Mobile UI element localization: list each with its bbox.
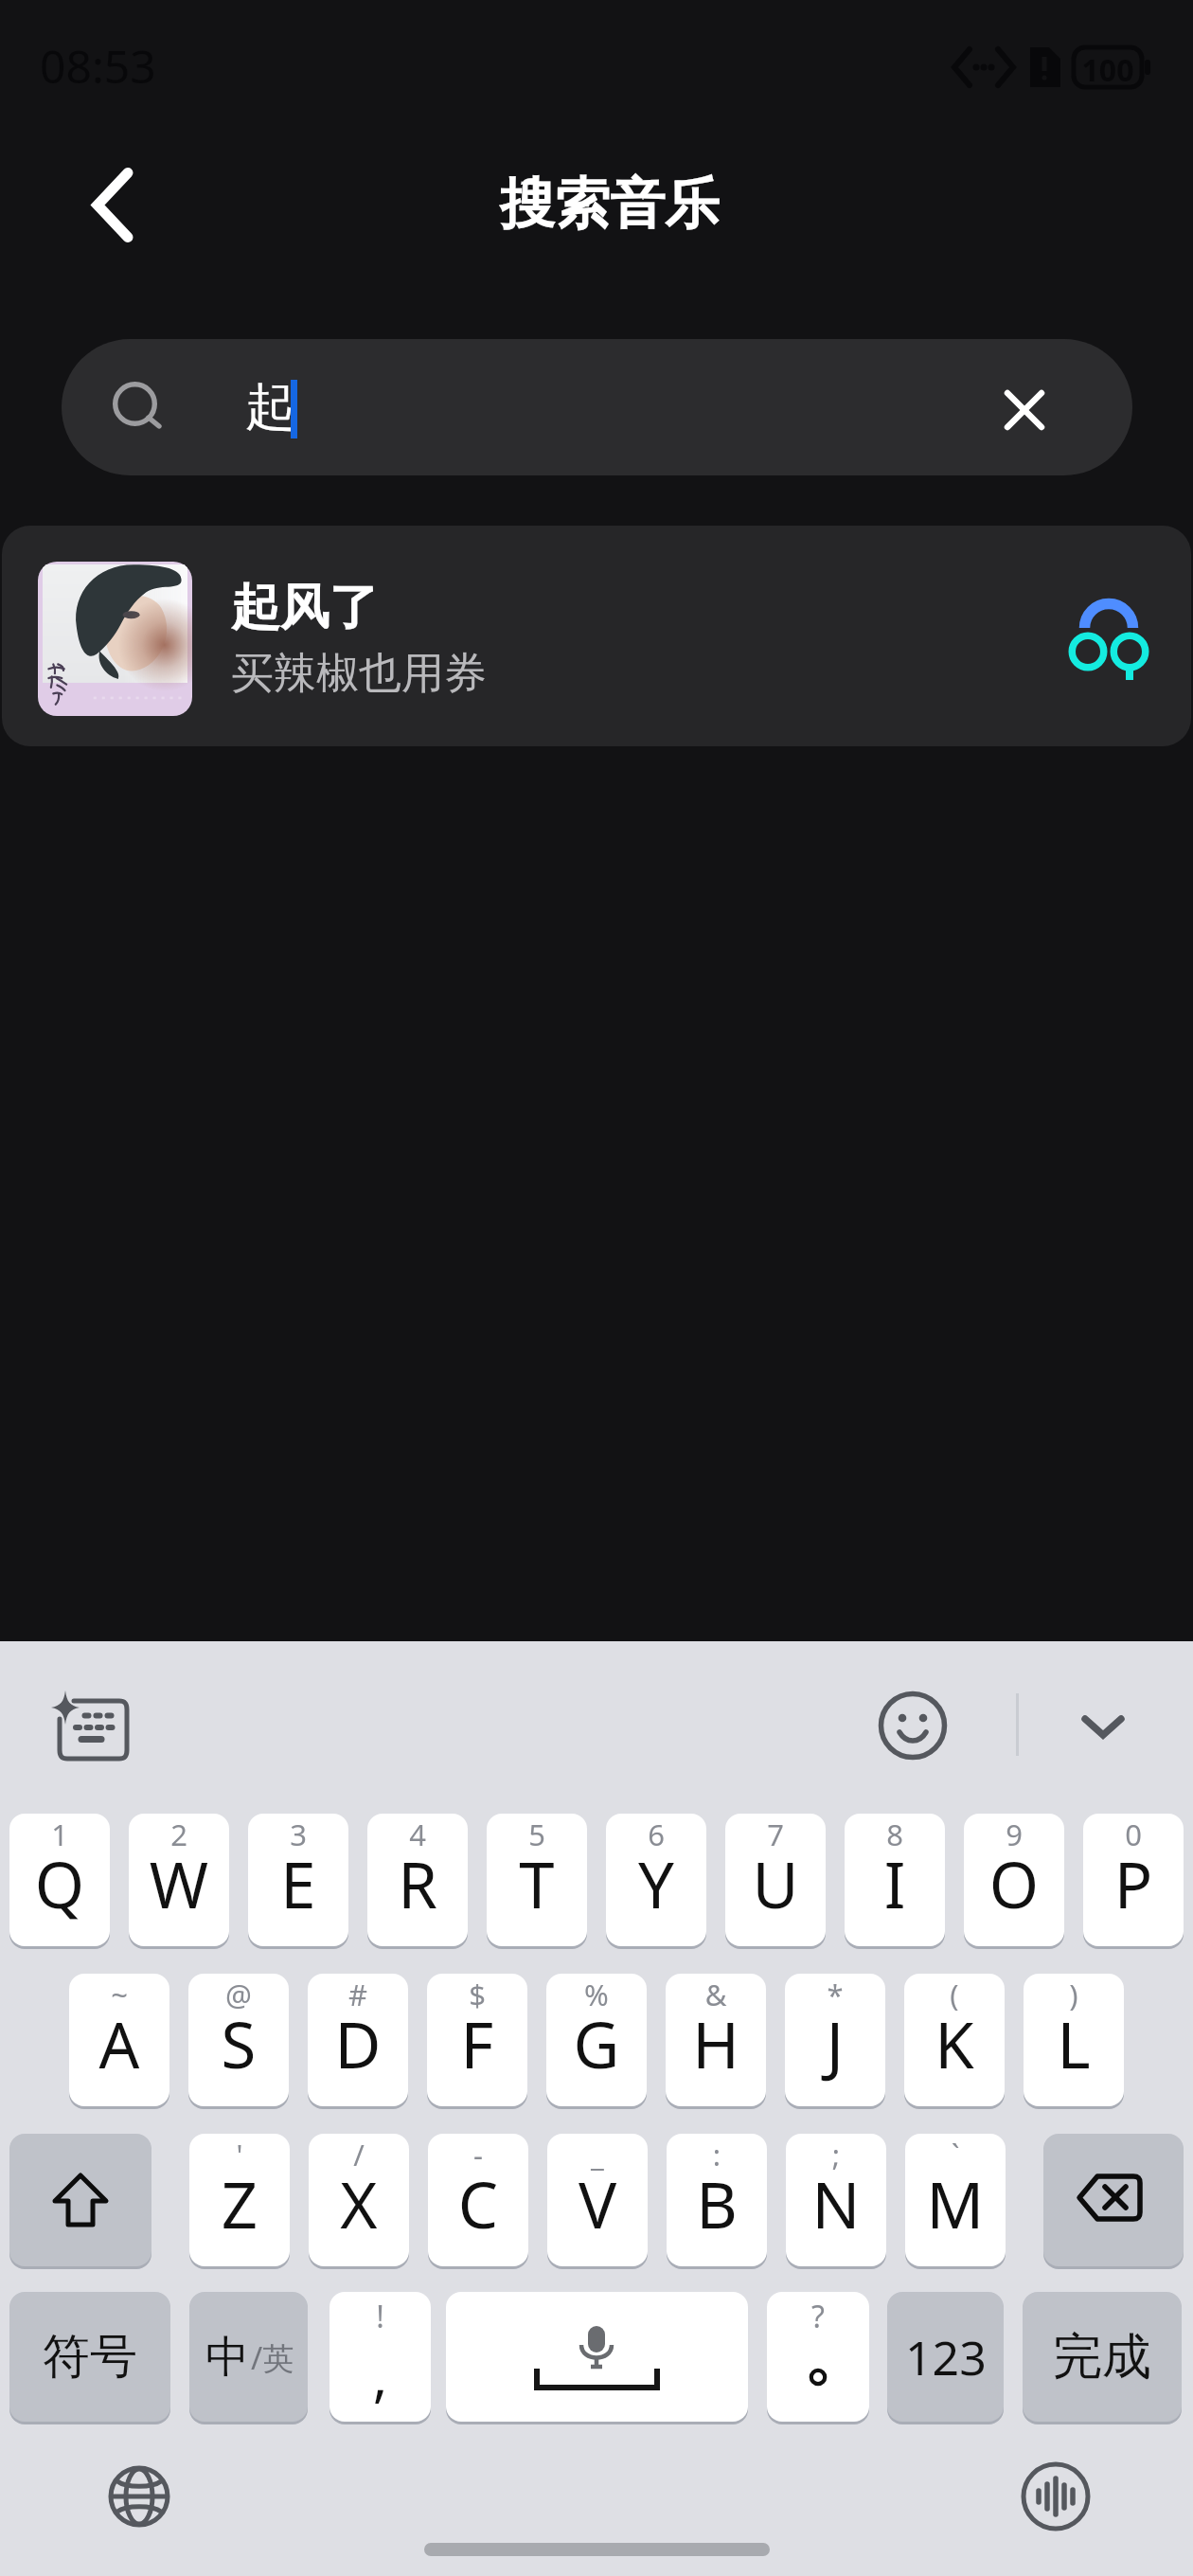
staticText: U: [725, 1840, 826, 1926]
button[interactable]: ?: [767, 2292, 869, 2422]
button[interactable]: /: [309, 2134, 409, 2266]
staticText: F: [427, 2000, 527, 2086]
button[interactable]: 8: [845, 1814, 945, 1946]
button[interactable]: !: [329, 2292, 431, 2422]
button[interactable]: @: [188, 1974, 289, 2106]
button[interactable]: 9: [964, 1814, 1064, 1946]
staticText: H: [666, 2000, 766, 2086]
staticText: I: [845, 1840, 945, 1926]
staticText: &: [666, 1975, 766, 2014]
staticText: `: [905, 2135, 1006, 2174]
button[interactable]: Space: [446, 2292, 748, 2422]
button[interactable]: Shift: [9, 2134, 151, 2266]
staticText: K: [904, 2000, 1005, 2086]
button[interactable]: ;: [786, 2134, 886, 2266]
button[interactable]: `: [905, 2134, 1006, 2266]
staticText: 3: [248, 1815, 348, 1854]
staticText: 100: [1081, 49, 1134, 87]
button[interactable]: 起: [62, 339, 1132, 475]
staticText: ): [1024, 1975, 1124, 2014]
button[interactable]: 2: [129, 1814, 229, 1946]
staticText: $: [427, 1975, 527, 2014]
staticText: -: [428, 2135, 528, 2174]
staticText: V: [547, 2160, 648, 2246]
staticText: J: [785, 2000, 885, 2086]
staticText: 9: [964, 1815, 1064, 1854]
button[interactable]: _: [547, 2134, 648, 2266]
button[interactable]: 0: [1083, 1814, 1184, 1946]
staticText: #: [308, 1975, 408, 2014]
staticText: 0: [1083, 1815, 1184, 1854]
button[interactable]: ': [189, 2134, 290, 2266]
staticText: 1: [9, 1815, 110, 1854]
staticText: L: [1024, 2000, 1124, 2086]
staticText: (: [904, 1975, 1005, 2014]
staticText: 完成: [1053, 2326, 1151, 2388]
staticText: 搜索音乐: [13, 170, 1193, 239]
staticText: 买辣椒也用券: [231, 647, 487, 701]
button[interactable]: :: [667, 2134, 767, 2266]
button[interactable]: 符号: [9, 2292, 170, 2422]
button[interactable]: 起风了: [2, 526, 1191, 746]
staticText: %: [546, 1975, 647, 2014]
staticText: 6: [606, 1815, 706, 1854]
staticText: 中: [205, 2330, 249, 2385]
button[interactable]: $: [427, 1974, 527, 2106]
button[interactable]: Backspace: [1043, 2134, 1184, 2266]
button[interactable]: Listen: [1040, 565, 1184, 709]
staticText: S: [188, 2000, 289, 2086]
staticText: 起风了: [231, 577, 379, 639]
button[interactable]: (: [904, 1974, 1005, 2106]
button[interactable]: &: [666, 1974, 766, 2106]
button[interactable]: Clear text: [968, 353, 1081, 467]
staticText: G: [546, 2000, 647, 2086]
staticText: R: [367, 1840, 468, 1926]
staticText: _: [547, 2135, 648, 2174]
button[interactable]: -: [428, 2134, 528, 2266]
staticText: 5: [487, 1815, 587, 1854]
staticText: X: [309, 2160, 409, 2246]
staticText: 08:53: [40, 35, 156, 97]
staticText: *: [785, 1975, 885, 2014]
button[interactable]: 3: [248, 1814, 348, 1946]
staticText: C: [428, 2160, 528, 2246]
button[interactable]: 1: [9, 1814, 110, 1946]
button[interactable]: 123: [887, 2292, 1004, 2422]
staticText: M: [905, 2160, 1006, 2246]
button[interactable]: ): [1024, 1974, 1124, 2106]
staticText: Z: [189, 2160, 290, 2246]
staticText: Q: [9, 1840, 110, 1926]
button[interactable]: *: [785, 1974, 885, 2106]
button[interactable]: Switch language: [103, 2460, 175, 2532]
staticText: O: [964, 1840, 1064, 1926]
staticText: W: [129, 1840, 229, 1926]
staticText: ;: [786, 2135, 886, 2174]
staticText: Y: [606, 1840, 706, 1926]
staticText: 2: [129, 1815, 229, 1854]
button[interactable]: Smart keyboard: [19, 1676, 161, 1777]
staticText: D: [308, 2000, 408, 2086]
button[interactable]: %: [546, 1974, 647, 2106]
staticText: 8: [845, 1815, 945, 1854]
button[interactable]: 5: [487, 1814, 587, 1946]
button[interactable]: 7: [725, 1814, 826, 1946]
button[interactable]: 完成: [1023, 2292, 1182, 2422]
button[interactable]: Voice input: [1020, 2460, 1092, 2532]
staticText: 123: [905, 2325, 987, 2389]
staticText: ': [189, 2135, 290, 2174]
button[interactable]: 6: [606, 1814, 706, 1946]
staticText: N: [786, 2160, 886, 2246]
button[interactable]: Hide keyboard: [1046, 1669, 1160, 1782]
button[interactable]: Chinese English toggle: [189, 2292, 308, 2422]
button[interactable]: 4: [367, 1814, 468, 1946]
staticText: 起: [245, 375, 296, 439]
button[interactable]: #: [308, 1974, 408, 2106]
staticText: T: [487, 1840, 587, 1926]
staticText: P: [1083, 1840, 1184, 1926]
staticText: :: [667, 2135, 767, 2174]
button[interactable]: Back: [53, 146, 172, 265]
button[interactable]: ~: [69, 1974, 169, 2106]
staticText: ?: [767, 2296, 869, 2337]
staticText: 符号: [43, 2327, 137, 2387]
button[interactable]: Emoji: [848, 1669, 981, 1782]
